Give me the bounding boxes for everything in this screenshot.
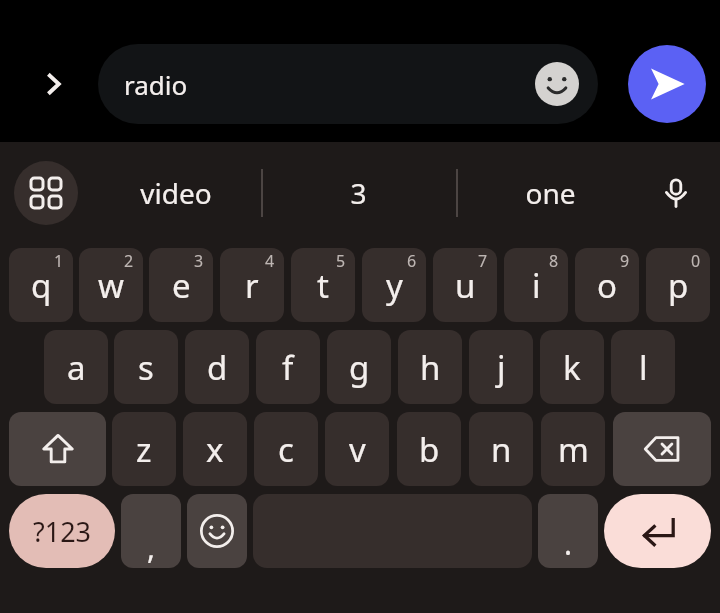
- staticText: 0: [691, 250, 701, 272]
- button[interactable]: l: [611, 330, 675, 404]
- staticText: o: [597, 263, 617, 308]
- staticText: d: [207, 345, 228, 390]
- button[interactable]: 3: [261, 142, 456, 244]
- staticText: ,: [147, 527, 156, 568]
- button[interactable]: y: [362, 248, 426, 322]
- button[interactable]: a: [44, 330, 108, 404]
- staticText: 7: [478, 250, 488, 272]
- button[interactable]: j: [469, 330, 533, 404]
- staticText: n: [491, 427, 512, 472]
- staticText: 9: [620, 250, 630, 272]
- staticText: e: [172, 263, 191, 308]
- button[interactable]: video: [90, 142, 261, 244]
- button[interactable]: c: [254, 412, 318, 486]
- staticText: p: [668, 263, 689, 308]
- staticText: 3: [194, 250, 204, 272]
- button[interactable]: Emoji: [534, 61, 580, 107]
- button[interactable]: ,: [121, 494, 181, 568]
- button[interactable]: Enter: [604, 494, 711, 568]
- staticText: b: [419, 427, 440, 472]
- button[interactable]: n: [469, 412, 533, 486]
- button[interactable]: p: [646, 248, 710, 322]
- staticText: j: [497, 345, 506, 390]
- staticText: 8: [549, 250, 559, 272]
- staticText: one: [525, 174, 576, 212]
- staticText: 2: [124, 250, 134, 272]
- staticText: w: [98, 263, 124, 308]
- button[interactable]: r: [220, 248, 284, 322]
- staticText: f: [282, 345, 294, 390]
- button[interactable]: f: [256, 330, 320, 404]
- button[interactable]: k: [540, 330, 604, 404]
- staticText: k: [563, 345, 581, 390]
- button[interactable]: h: [398, 330, 462, 404]
- staticText: i: [532, 263, 541, 308]
- staticText: 5: [336, 250, 346, 272]
- button[interactable]: x: [183, 412, 247, 486]
- button[interactable]: e: [149, 248, 213, 322]
- staticText: u: [455, 263, 476, 308]
- button[interactable]: u: [433, 248, 497, 322]
- button[interactable]: .: [538, 494, 598, 568]
- staticText: h: [420, 345, 441, 390]
- button[interactable]: q: [9, 248, 73, 322]
- staticText: x: [206, 427, 224, 472]
- button[interactable]: Voice input: [646, 163, 706, 223]
- button[interactable]: one: [456, 142, 645, 244]
- button[interactable]: Expand: [22, 52, 86, 116]
- button[interactable]: g: [327, 330, 391, 404]
- staticText: video: [140, 174, 212, 212]
- button[interactable]: Shift: [9, 412, 106, 486]
- staticText: 6: [407, 250, 417, 272]
- staticText: q: [31, 263, 52, 308]
- staticText: y: [386, 263, 403, 308]
- button[interactable]: w: [79, 248, 143, 322]
- button[interactable]: z: [112, 412, 176, 486]
- staticText: radio: [124, 67, 188, 102]
- button[interactable]: Toolbar: [14, 161, 78, 225]
- staticText: c: [278, 427, 294, 472]
- button[interactable]: b: [397, 412, 461, 486]
- button[interactable]: m: [541, 412, 605, 486]
- staticText: t: [317, 263, 329, 308]
- staticText: v: [349, 427, 366, 472]
- button[interactable]: t: [291, 248, 355, 322]
- button[interactable]: Emoji keyboard: [187, 494, 247, 568]
- staticText: ?123: [33, 513, 92, 550]
- button[interactable]: d: [185, 330, 249, 404]
- staticText: m: [558, 427, 589, 472]
- staticText: r: [245, 263, 259, 308]
- button[interactable]: i: [504, 248, 568, 322]
- staticText: z: [136, 427, 152, 472]
- staticText: a: [67, 345, 86, 390]
- staticText: 4: [265, 250, 275, 272]
- staticText: 1: [54, 250, 64, 272]
- button[interactable]: s: [114, 330, 178, 404]
- button[interactable]: v: [325, 412, 389, 486]
- button[interactable]: radio: [98, 44, 598, 124]
- staticText: .: [564, 523, 573, 564]
- button[interactable]: Backspace: [613, 412, 711, 486]
- staticText: s: [138, 345, 154, 390]
- button[interactable]: o: [575, 248, 639, 322]
- staticText: 3: [350, 174, 367, 212]
- staticText: l: [639, 345, 648, 390]
- staticText: g: [349, 345, 370, 390]
- button[interactable]: ?123: [9, 494, 115, 568]
- button[interactable]: Send: [628, 45, 706, 123]
